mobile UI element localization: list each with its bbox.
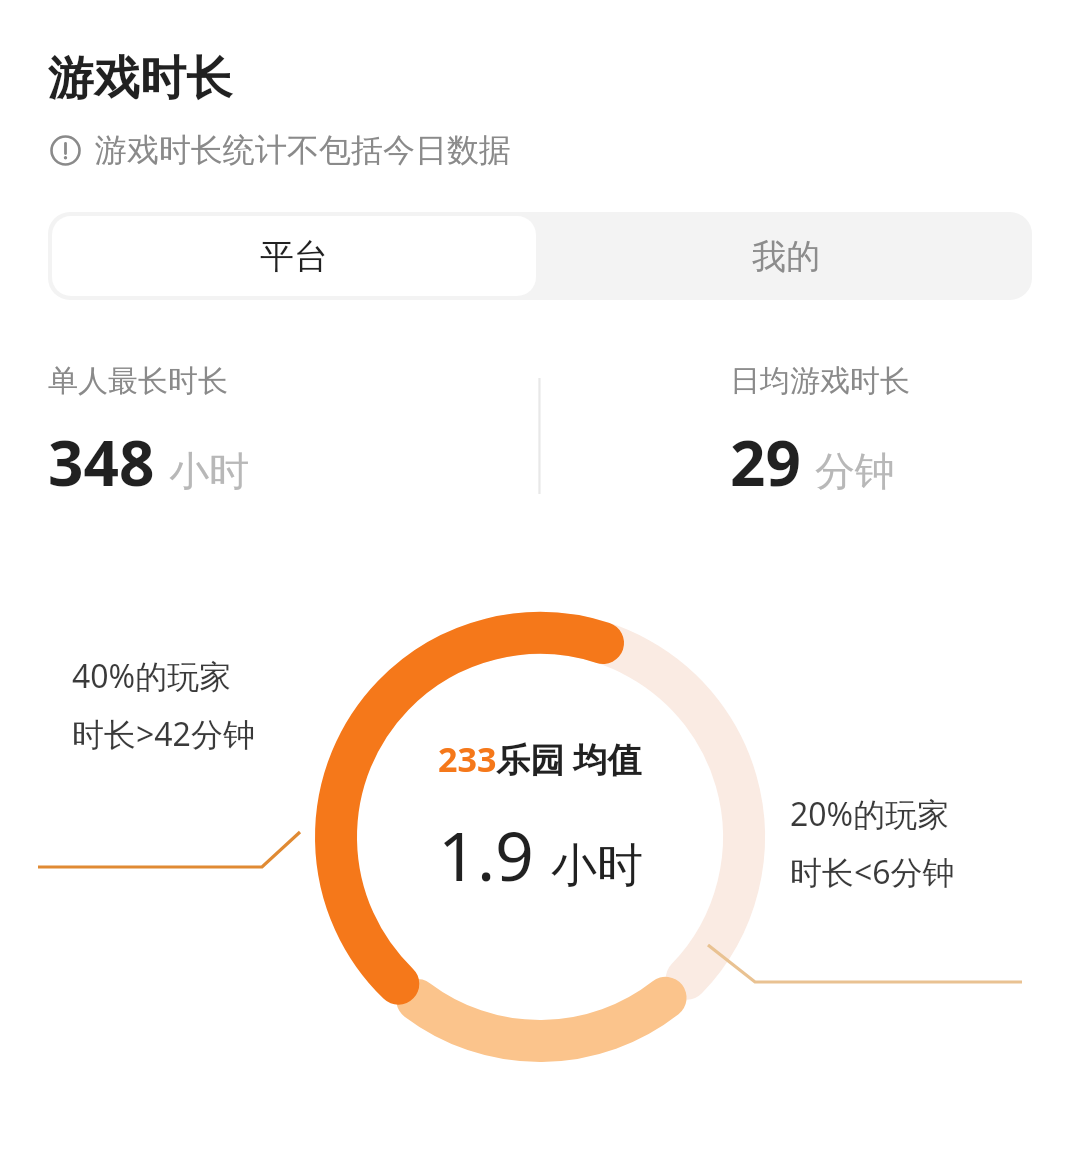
staticText: 单人最长时长 [48, 362, 228, 400]
staticText: 40%的玩家 [72, 654, 232, 698]
other: Info [50, 135, 81, 166]
button[interactable]: 平台 [52, 216, 536, 296]
staticText: 日均游戏时长 [730, 362, 910, 400]
staticText: 29 [730, 420, 801, 502]
staticText: 小时 [169, 446, 249, 496]
staticText: 348 [48, 420, 155, 502]
staticText: 我的 [752, 235, 820, 278]
staticText: 游戏时长统计不包括今日数据 [95, 130, 511, 170]
staticText: 时长>42分钟 [72, 712, 255, 756]
staticText: 小时 [551, 837, 643, 895]
staticText: 游戏时长 [48, 50, 232, 108]
staticText: 时长<6分钟 [790, 850, 955, 894]
staticText: 分钟 [815, 446, 895, 496]
staticText: 1.9 [438, 808, 535, 901]
staticText: 233乐园 均值 [438, 736, 642, 782]
button[interactable]: 我的 [540, 212, 1032, 300]
staticText: 平台 [260, 235, 328, 278]
staticText: 20%的玩家 [790, 792, 950, 836]
